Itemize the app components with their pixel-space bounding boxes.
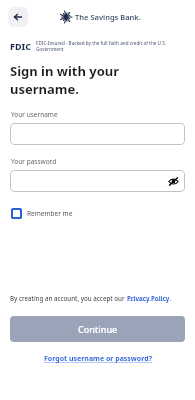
staticText: FDIC-Insured - Backed by the full faith … <box>36 40 185 52</box>
button[interactable]: Show password <box>166 174 180 188</box>
staticText: Your username <box>11 110 58 119</box>
staticText: FDIC <box>10 40 32 52</box>
staticText: . <box>170 294 172 302</box>
staticText: Continue <box>78 323 118 335</box>
staticText: Sign in with your username. <box>10 62 185 98</box>
button[interactable]: Privacy Policy <box>127 294 170 302</box>
button[interactable] <box>10 123 185 145</box>
staticText: Remember me <box>27 209 73 218</box>
button[interactable]: Back <box>8 7 28 27</box>
button[interactable]: Show password <box>10 170 185 192</box>
staticText: The Savings Bank. <box>75 12 141 22</box>
staticText: By creating an account, you accept our <box>10 294 127 302</box>
button[interactable]: Continue <box>10 316 185 342</box>
button[interactable]: Remember me <box>9 206 75 221</box>
staticText: Your password <box>11 157 57 166</box>
button[interactable]: Forgot username or password? <box>40 352 156 366</box>
